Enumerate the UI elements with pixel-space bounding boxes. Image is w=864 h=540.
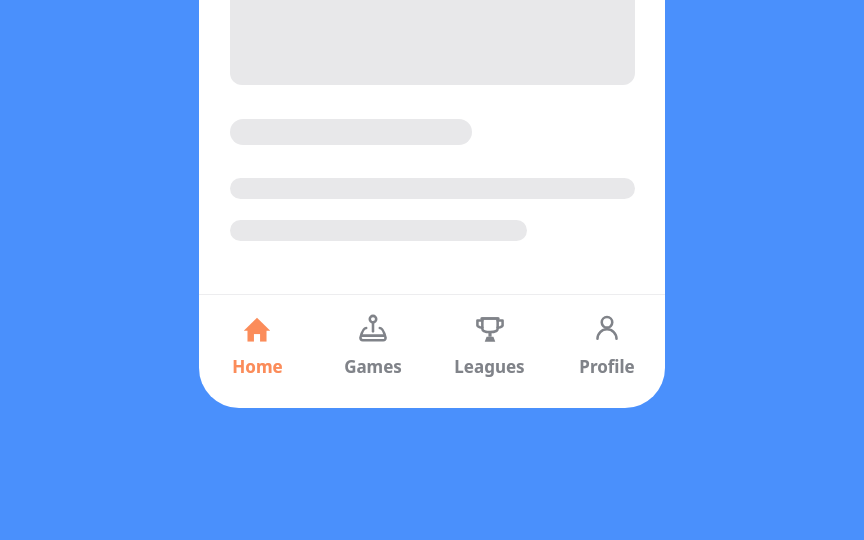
staticText: Home	[232, 355, 283, 378]
button[interactable]: Games	[315, 295, 431, 408]
button[interactable]: Leagues	[431, 295, 548, 408]
staticText: Games	[344, 355, 402, 378]
staticText: Profile	[579, 355, 635, 378]
button[interactable]: Profile	[548, 295, 665, 408]
staticText: Leagues	[454, 355, 525, 378]
button[interactable]: Home	[199, 295, 315, 408]
